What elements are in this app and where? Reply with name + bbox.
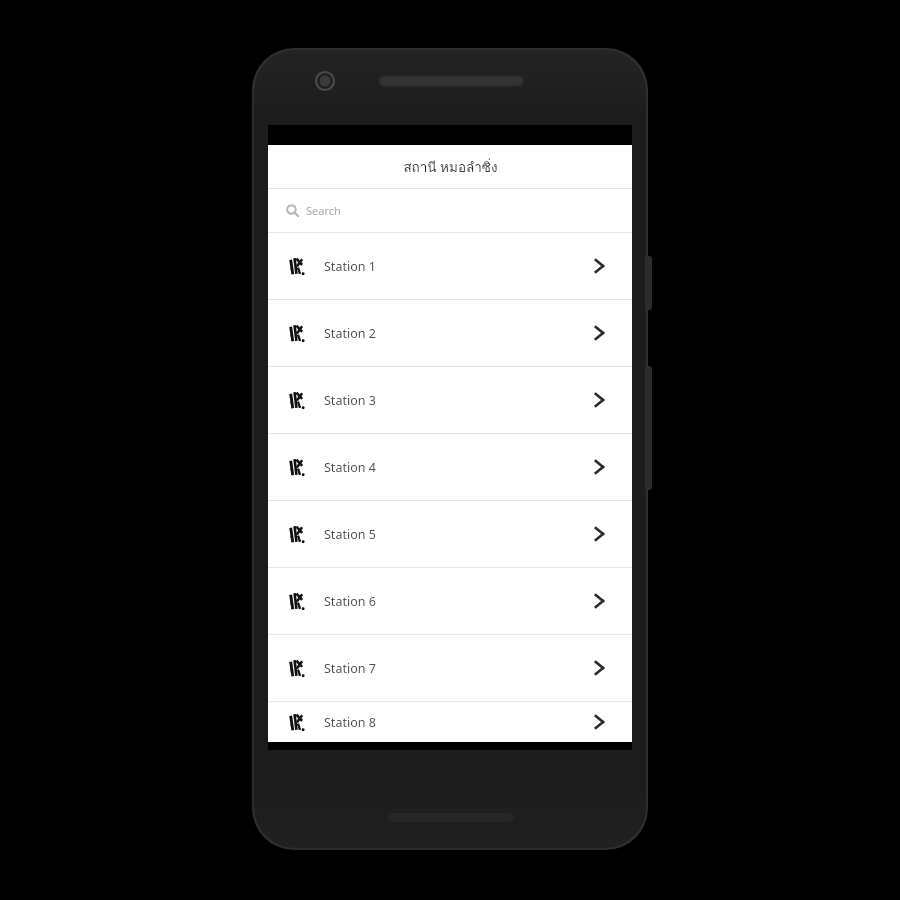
staticText: Station 8	[324, 714, 376, 731]
staticText: Station 1	[324, 258, 376, 275]
other: Open Station 7	[584, 653, 614, 683]
button[interactable]: Search	[268, 189, 632, 232]
other: Open Station 5	[584, 519, 614, 549]
button[interactable]: Station 6	[268, 568, 632, 634]
button[interactable]: Station 8	[268, 702, 632, 742]
other: Open Station 2	[584, 318, 614, 348]
other: Open Station 3	[584, 385, 614, 415]
button[interactable]: Station 7	[268, 635, 632, 701]
staticText: Station 6	[324, 593, 376, 610]
staticText: Station 5	[324, 526, 376, 543]
other: Open Station 4	[584, 452, 614, 482]
button[interactable]: Station 4	[268, 434, 632, 500]
staticText: Station 7	[324, 660, 376, 677]
other: Open Station 1	[584, 251, 614, 281]
staticText: สถานี หมอลำซิ่ง	[403, 156, 498, 177]
button[interactable]: Station 3	[268, 367, 632, 433]
button[interactable]: Station 2	[268, 300, 632, 366]
other: Open Station 6	[584, 586, 614, 616]
button[interactable]: Station 1	[268, 233, 632, 299]
other: Open Station 8	[584, 707, 614, 737]
button[interactable]: Station 5	[268, 501, 632, 567]
staticText: Search	[306, 203, 341, 218]
staticText: Station 2	[324, 325, 376, 342]
staticText: Station 4	[324, 459, 376, 476]
staticText: Station 3	[324, 392, 376, 409]
